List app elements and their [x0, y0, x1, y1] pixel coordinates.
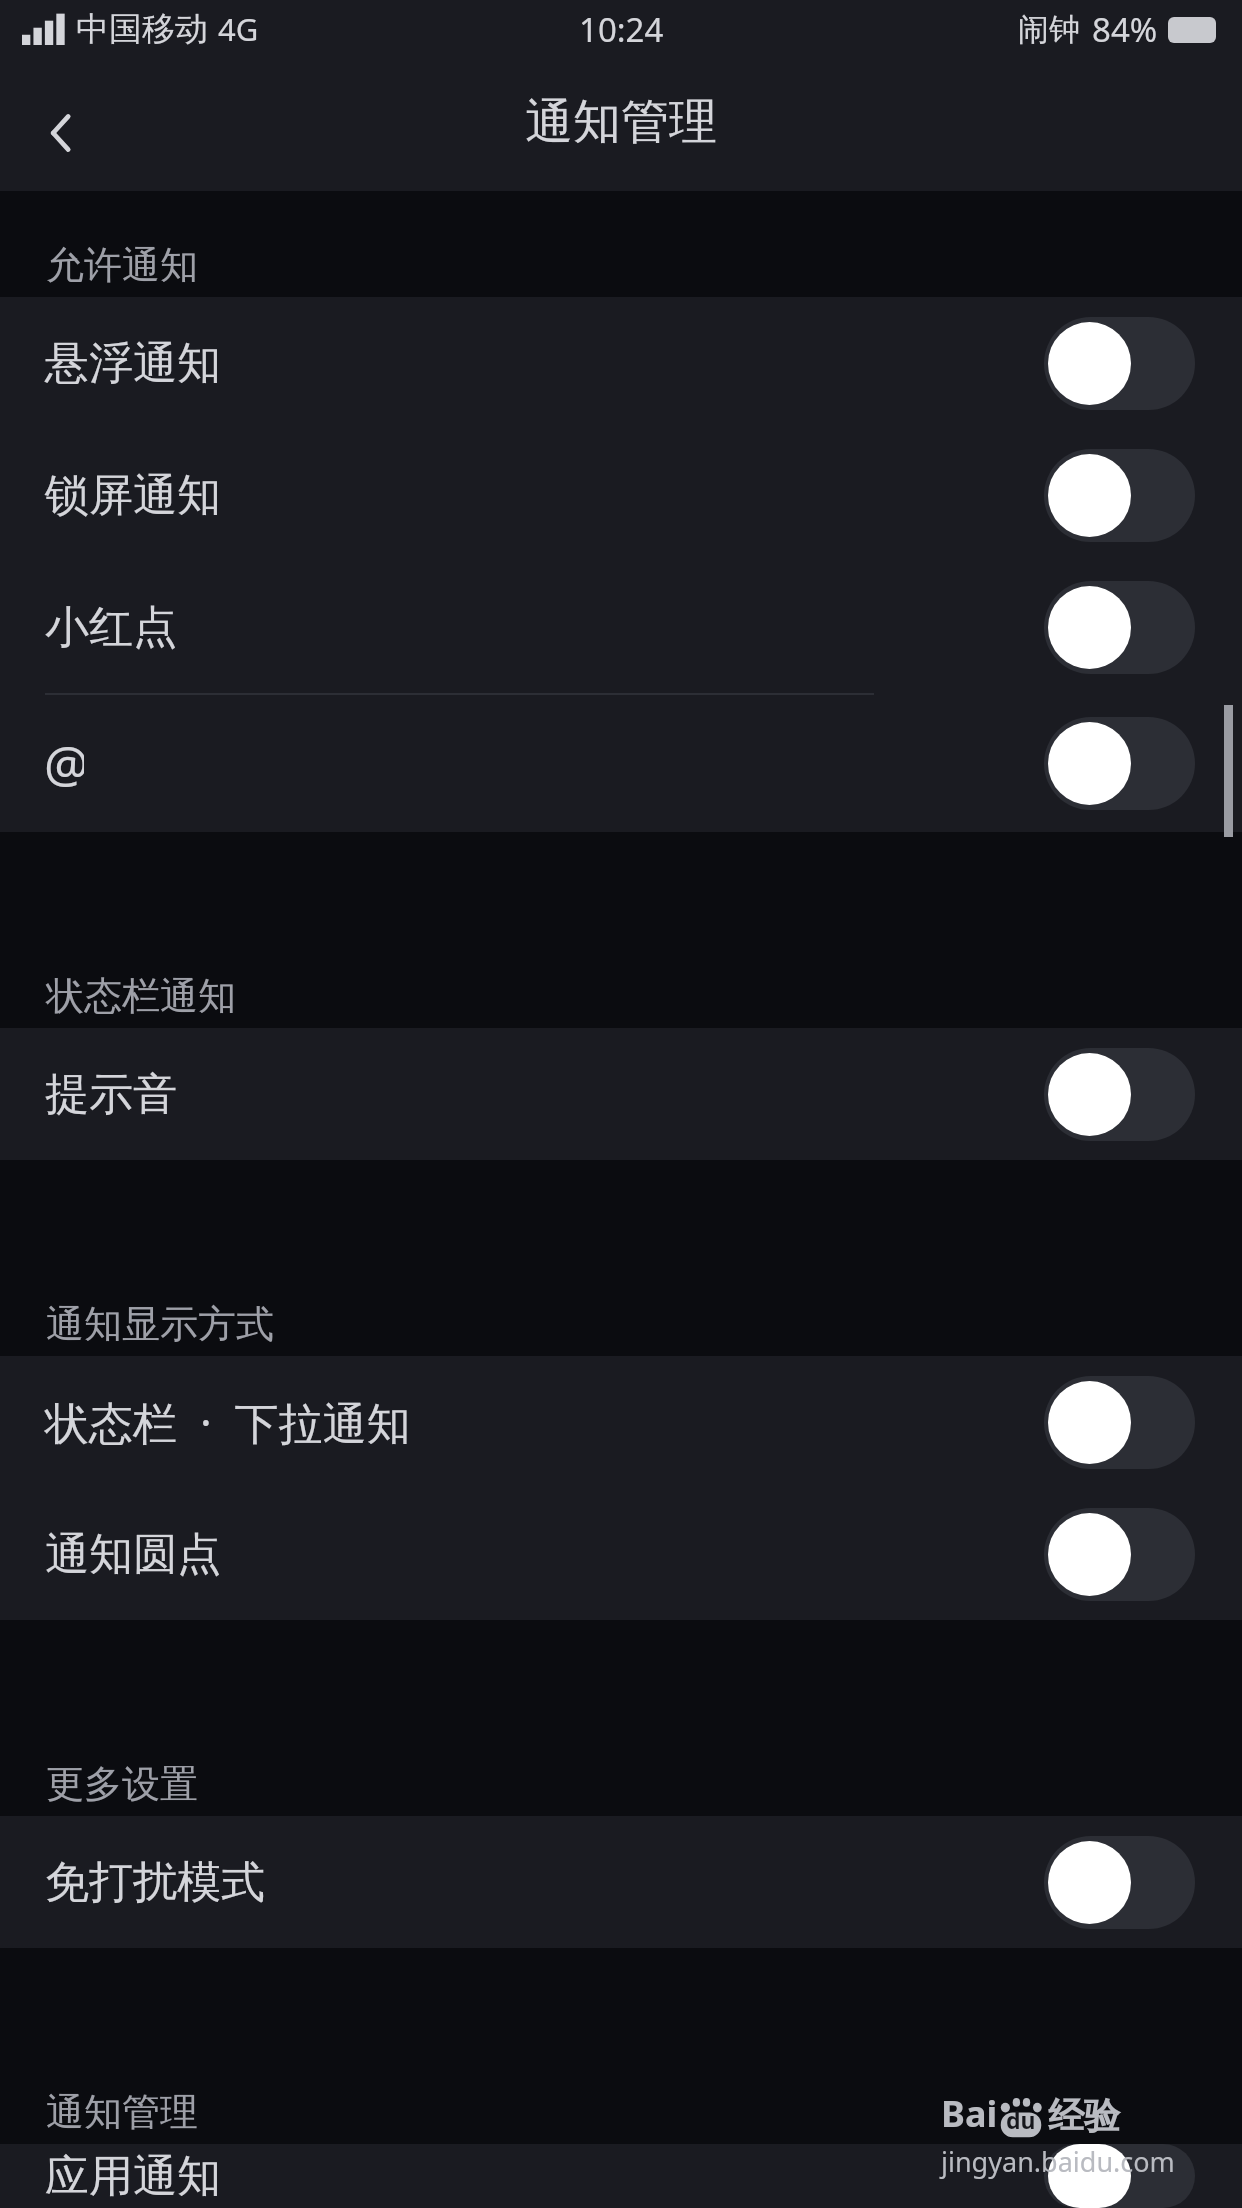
staticText: 锁屏通知: [45, 468, 221, 523]
button[interactable]: 状态栏 · 下拉通知: [0, 1356, 1242, 1488]
staticText: 84%: [1092, 7, 1158, 52]
other: Toggle: [1044, 717, 1195, 810]
staticText: 通知显示方式: [46, 1300, 274, 1348]
button[interactable]: Back: [28, 99, 96, 167]
button[interactable]: 应用通知: [0, 2144, 1242, 2208]
other: Toggle: [1044, 581, 1195, 674]
other: Email notifications: [44, 734, 84, 794]
staticText: 10:24: [579, 7, 664, 52]
staticText: @: [44, 729, 84, 789]
button[interactable]: 通知圆点: [0, 1488, 1242, 1620]
button[interactable]: 小红点: [0, 561, 1242, 693]
other: Toggle: [1044, 317, 1195, 410]
button[interactable]: 提示音: [0, 1028, 1242, 1160]
staticText: 中国移动: [76, 8, 208, 50]
other: Toggle: [1044, 1836, 1195, 1929]
staticText: 闹钟: [1018, 10, 1080, 49]
button[interactable]: 锁屏通知: [0, 429, 1242, 561]
staticText: 状态栏 · 下拉通知: [45, 1392, 411, 1452]
other: Toggle: [1044, 1048, 1195, 1141]
staticText: 经验: [1048, 2093, 1120, 2138]
staticText: jingyan.baidu.com: [941, 2143, 1175, 2180]
other: Back: [36, 107, 88, 159]
button[interactable]: 免打扰模式: [0, 1816, 1242, 1948]
staticText: 应用通知: [45, 2149, 221, 2204]
staticText: 通知管理: [46, 2088, 198, 2136]
button[interactable]: Email notifications: [0, 695, 1242, 832]
staticText: 允许通知: [46, 241, 198, 289]
staticText: 通知管理: [525, 92, 717, 152]
other: Toggle: [1044, 1508, 1195, 1601]
staticText: 4G: [218, 8, 259, 50]
other: Toggle: [1044, 1376, 1195, 1469]
staticText: 状态栏通知: [46, 972, 236, 1020]
other: Toggle: [1044, 2144, 1195, 2208]
staticText: 小红点: [45, 600, 177, 655]
staticText: du: [1006, 2104, 1036, 2135]
staticText: Bai: [941, 2089, 998, 2138]
button[interactable]: 悬浮通知: [0, 297, 1242, 429]
staticText: 通知圆点: [45, 1527, 221, 1582]
staticText: 更多设置: [46, 1760, 198, 1808]
staticText: 免打扰模式: [45, 1855, 265, 1910]
staticText: 悬浮通知: [45, 336, 221, 391]
other: Toggle: [1044, 449, 1195, 542]
staticText: 提示音: [45, 1067, 177, 1122]
